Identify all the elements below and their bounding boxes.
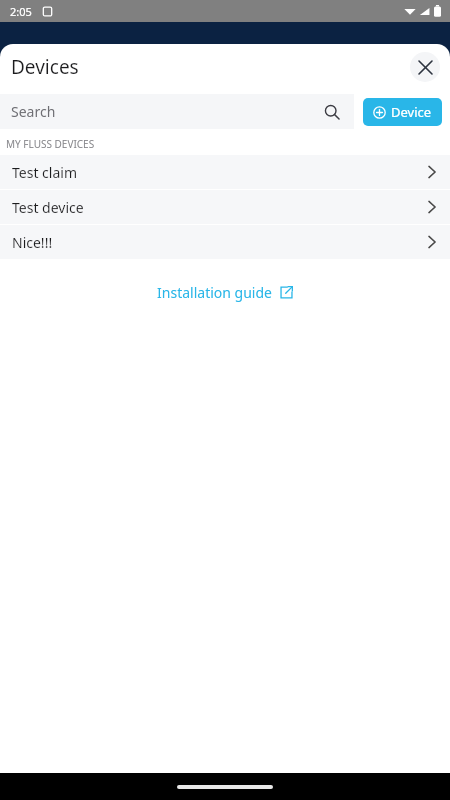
staticText: Nice!!! xyxy=(12,233,53,252)
button[interactable]: Installation guide xyxy=(151,279,299,306)
staticText: 2:05 xyxy=(10,4,32,19)
staticText: Search xyxy=(11,102,56,121)
staticText: Test claim xyxy=(12,163,77,182)
staticText: Test device xyxy=(12,198,84,217)
button[interactable]: Close xyxy=(410,52,440,82)
button[interactable]: Test device xyxy=(0,190,450,224)
button[interactable]: Nice!!! xyxy=(0,225,450,259)
staticText: Installation guide xyxy=(157,283,272,302)
button[interactable]: Test claim xyxy=(0,155,450,189)
staticText: Device xyxy=(391,103,432,121)
staticText: MY FLUSS DEVICES xyxy=(6,137,95,151)
staticText: Devices xyxy=(11,54,79,80)
button[interactable]: Search xyxy=(0,94,354,129)
button[interactable]: Device xyxy=(363,98,442,126)
